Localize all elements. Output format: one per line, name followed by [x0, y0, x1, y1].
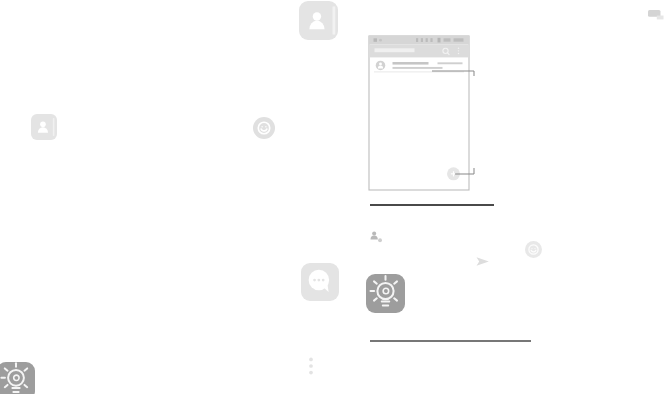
button[interactable]: More options	[305, 355, 317, 377]
button[interactable]: Contacts	[299, 1, 338, 40]
button[interactable]: Settings	[648, 8, 664, 21]
button[interactable]: Send	[475, 254, 490, 269]
button[interactable]: Emoji	[525, 241, 542, 258]
button[interactable]: Messaging	[301, 263, 339, 301]
button[interactable]: Add contact	[368, 229, 382, 243]
button[interactable]: Tip	[366, 274, 405, 313]
button[interactable]: Tip	[0, 362, 35, 394]
button[interactable]: Contacts	[31, 114, 57, 140]
button[interactable]: Emoji	[253, 117, 275, 139]
